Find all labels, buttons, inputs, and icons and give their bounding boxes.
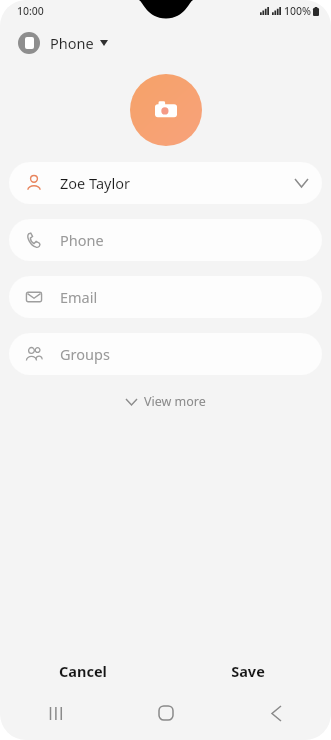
staticText: Save — [231, 661, 265, 681]
button[interactable]: Groups — [9, 333, 322, 375]
staticText: Zoe Taylor — [60, 173, 130, 193]
button[interactable]: Phone — [9, 219, 322, 261]
staticText: 10:00 — [17, 4, 44, 18]
button[interactable]: Recent apps — [0, 696, 111, 730]
button[interactable]: Cancel — [0, 654, 165, 688]
button[interactable]: View more — [116, 387, 216, 416]
button[interactable]: Save — [165, 654, 331, 688]
button[interactable]: Phone — [16, 28, 110, 58]
button[interactable]: Home — [111, 696, 221, 730]
staticText: Email — [60, 287, 98, 307]
button[interactable]: Email — [9, 276, 322, 318]
staticText: Phone — [50, 33, 94, 53]
staticText: Cancel — [59, 661, 107, 681]
button[interactable]: Zoe Taylor — [9, 162, 322, 204]
button[interactable]: Add contact photo — [130, 74, 202, 146]
staticText: Groups — [60, 344, 110, 364]
button[interactable]: Back — [221, 696, 331, 730]
staticText: View more — [144, 393, 206, 410]
staticText: 100% — [284, 4, 311, 18]
staticText: Phone — [60, 230, 104, 250]
